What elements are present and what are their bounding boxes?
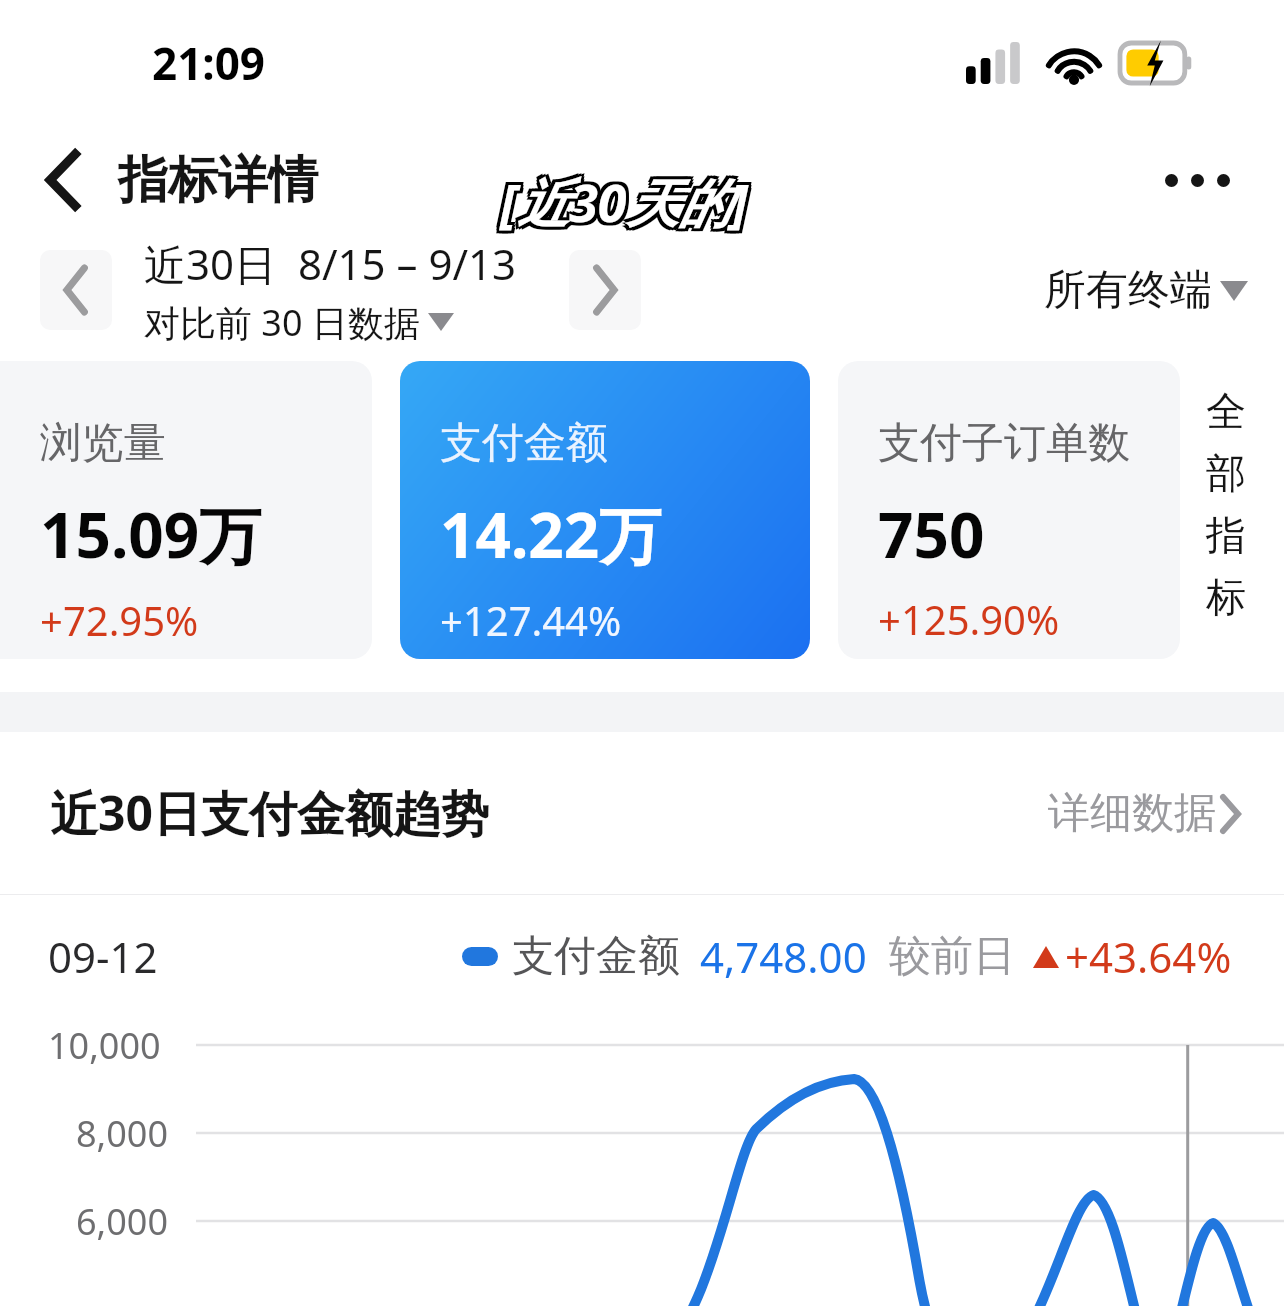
staticText: 近30日支付金额趋势 [50,780,489,846]
staticText: 4,748.00 [700,928,867,985]
staticText: 10,000 [48,1021,161,1070]
button[interactable]: 全 [1198,386,1254,634]
staticText: 所有终端 [1044,264,1212,317]
staticText: [近30天的] [500,169,748,240]
staticText: 6,000 [76,1197,169,1246]
staticText: [近30天的] [497,169,745,240]
staticText: 对比前 30 日数据 [144,298,420,345]
staticText: 15.09万 [40,492,262,577]
staticText: [近30天的] [503,163,751,234]
button[interactable]: Back [30,147,96,213]
button[interactable]: Previous period [40,250,112,330]
staticText: +125.90% [878,592,1060,646]
staticText: 较前日 [889,930,1015,983]
staticText: 支付子订单数 [878,417,1130,470]
staticText: 750 [878,492,985,576]
staticText: [近30天的] [497,163,745,234]
button[interactable]: 对比前 30 日数据 [144,298,454,345]
staticText: 21:09 [152,33,266,93]
staticText: 09-12 [48,928,158,985]
button[interactable]: 所有终端 [1044,264,1248,317]
staticText: 支付金额 [512,930,680,983]
staticText: 14.22万 [440,492,662,577]
staticText: 浏览量 [40,417,166,470]
button[interactable]: 支付子订单数 [838,361,1180,659]
staticText: 近30日 8/15 – 9/13 [144,235,517,292]
staticText: [近30天的] [497,166,745,237]
staticText: +43.64% [1065,928,1232,985]
button[interactable]: Next period [569,250,641,330]
staticText: 标 [1206,572,1246,622]
staticText: 部 [1206,448,1246,498]
staticText: 支付金额 [440,417,608,470]
staticText: [近30天的] [503,169,751,240]
staticText: 全 [1206,386,1246,436]
staticText: 指标详情 [118,149,318,212]
staticText: +127.44% [440,593,622,647]
staticText: [近30天的] [503,166,751,237]
staticText: [近30天的] [500,163,748,234]
staticText: 详细数据 [1048,787,1216,840]
staticText: 8,000 [76,1109,169,1158]
button[interactable]: 浏览量 [0,361,372,659]
staticText: [近30天的] [500,166,748,237]
button[interactable]: 详细数据 [1048,787,1240,840]
button[interactable]: 支付金额 [400,361,810,659]
staticText: +72.95% [40,593,199,647]
button[interactable]: More options [1152,150,1242,210]
staticText: 指 [1206,510,1246,560]
